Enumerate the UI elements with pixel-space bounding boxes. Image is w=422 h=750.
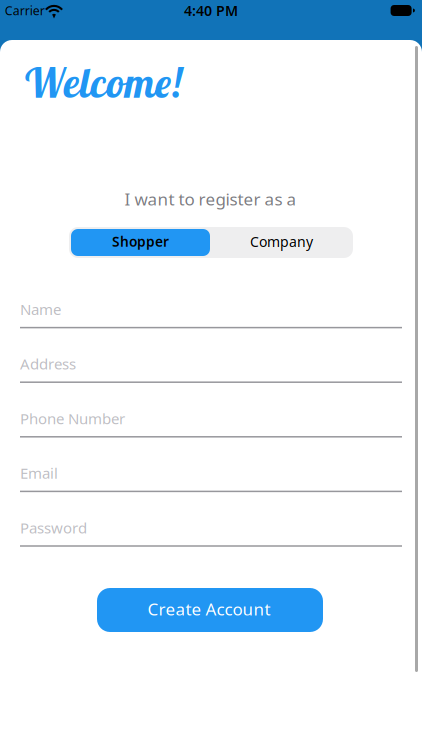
staticText: Address xyxy=(20,354,76,374)
secureTextField[interactable]: Password xyxy=(20,522,402,542)
staticText: Password xyxy=(20,522,87,542)
staticText: Phone Number xyxy=(20,413,125,433)
textField[interactable]: Address xyxy=(20,358,402,378)
button[interactable]: Company xyxy=(212,229,351,256)
staticText: Email xyxy=(20,463,58,483)
button[interactable]: Shopper xyxy=(71,229,210,256)
staticText: Phone Number xyxy=(20,408,125,429)
staticText: I want to register as a xyxy=(124,187,296,210)
textField[interactable]: Name xyxy=(20,303,402,324)
staticText: Name xyxy=(20,299,61,319)
staticText: Carrier xyxy=(5,2,45,19)
textField[interactable]: Phone Number xyxy=(20,413,402,433)
staticText: Address xyxy=(20,358,76,378)
staticText: 4:40 PM xyxy=(184,1,238,20)
staticText: Password xyxy=(20,517,87,538)
staticText: Name xyxy=(20,303,61,324)
staticText: Shopper xyxy=(112,232,169,251)
staticText: Create Account xyxy=(147,597,270,620)
textField[interactable]: Email xyxy=(20,467,402,488)
staticText: Email xyxy=(20,467,58,488)
staticText: Company xyxy=(250,232,313,251)
button[interactable]: Create Account xyxy=(97,588,323,632)
staticText: Welcome! xyxy=(25,57,181,108)
